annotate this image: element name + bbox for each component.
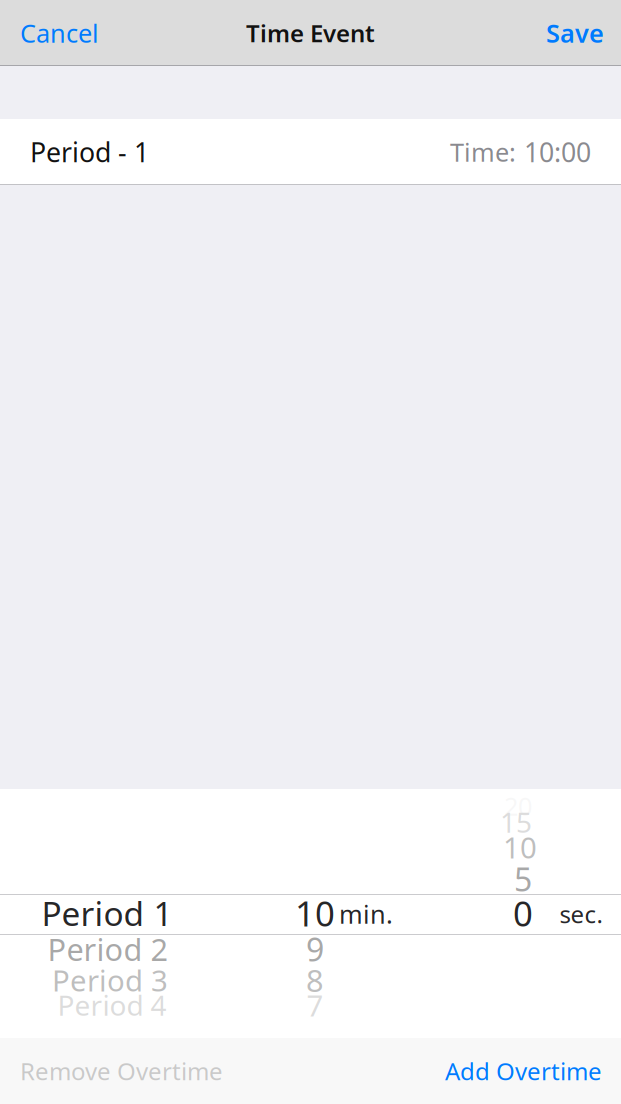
staticText: Period 3 xyxy=(52,960,168,999)
staticText: Cancel xyxy=(20,16,99,50)
staticText: 10:00 xyxy=(524,134,591,170)
staticText: 8 xyxy=(306,960,324,1000)
staticText: Save xyxy=(546,16,604,50)
staticText: Period 1 xyxy=(41,891,172,935)
staticText: Time Event xyxy=(246,17,375,49)
staticText: Period 2 xyxy=(47,929,168,969)
staticText: 10 xyxy=(295,890,335,936)
staticText: 7 xyxy=(306,985,323,1024)
staticText: Period - 1 xyxy=(30,134,149,170)
staticText: Add Overtime xyxy=(445,1055,602,1087)
button[interactable]: Add Overtime xyxy=(433,1041,621,1101)
staticText: 15 xyxy=(500,803,532,841)
staticText: min. xyxy=(339,897,393,931)
staticText: Period 4 xyxy=(57,986,166,1024)
button[interactable]: Save xyxy=(536,5,621,61)
staticText: 9 xyxy=(306,928,324,970)
staticText: 0 xyxy=(513,890,533,936)
button[interactable]: Cancel xyxy=(0,5,109,61)
staticText: Time: xyxy=(450,135,516,169)
staticText: 20 xyxy=(504,789,532,823)
staticText: Remove Overtime xyxy=(20,1055,223,1087)
staticText: 5 xyxy=(514,858,532,900)
staticText: 10 xyxy=(503,827,537,866)
button[interactable]: Remove Overtime xyxy=(0,1041,235,1101)
button[interactable]: Period - 1 xyxy=(0,119,621,185)
staticText: sec. xyxy=(559,898,602,930)
